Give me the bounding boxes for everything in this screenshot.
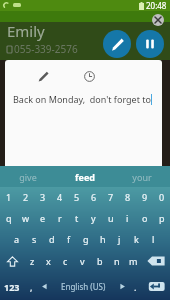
- staticText: Back on Monday, don't forget to: [13, 93, 151, 105]
- staticText: w: [22, 212, 30, 224]
- button[interactable]: ,: [24, 273, 38, 300]
- button[interactable]: p: [153, 207, 170, 228]
- staticText: f: [67, 233, 71, 245]
- staticText: k: [134, 233, 139, 245]
- staticText: English (US): [61, 281, 106, 292]
- button[interactable]: 7: [102, 187, 119, 207]
- button[interactable]: y: [85, 207, 102, 228]
- staticText: p: [159, 212, 165, 224]
- staticText: 20:48: [146, 0, 167, 11]
- staticText: your: [132, 171, 152, 183]
- button[interactable]: h: [94, 228, 111, 249]
- button[interactable]: your: [113, 166, 170, 187]
- button[interactable]: 5: [68, 187, 85, 207]
- button[interactable]: e: [34, 207, 51, 228]
- staticText: t: [75, 212, 79, 224]
- staticText: give: [19, 171, 37, 183]
- staticText: i: [126, 212, 129, 224]
- button[interactable]: 123: [0, 273, 24, 300]
- button[interactable]: b: [91, 249, 108, 273]
- button[interactable]: Edit: [103, 30, 131, 58]
- staticText: a: [14, 233, 20, 245]
- staticText: ,: [30, 281, 33, 293]
- button[interactable]: t: [68, 207, 85, 228]
- staticText: Emily: [7, 21, 45, 41]
- button[interactable]: 9: [136, 187, 153, 207]
- staticText: z: [30, 255, 35, 267]
- staticText: x: [46, 255, 51, 267]
- button[interactable]: 6: [85, 187, 102, 207]
- staticText: 1: [6, 191, 12, 203]
- staticText: m: [129, 255, 138, 267]
- button[interactable]: w: [17, 207, 34, 228]
- staticText: 2: [23, 191, 29, 203]
- button[interactable]: o: [136, 207, 153, 228]
- button[interactable]: Close: [152, 14, 164, 26]
- button[interactable]: Previous language: [38, 273, 50, 300]
- staticText: 9: [142, 191, 148, 203]
- button[interactable]: k: [128, 228, 145, 249]
- staticText: d: [49, 233, 55, 245]
- button[interactable]: j: [111, 228, 128, 249]
- button[interactable]: 1: [0, 187, 17, 207]
- button[interactable]: Enter: [142, 273, 170, 300]
- staticText: 0: [159, 191, 165, 203]
- button[interactable]: i: [119, 207, 136, 228]
- staticText: q: [6, 212, 12, 224]
- staticText: feed: [75, 171, 95, 183]
- button[interactable]: z: [24, 249, 40, 273]
- button[interactable]: Shift: [0, 249, 24, 273]
- staticText: b: [97, 255, 103, 267]
- staticText: h: [100, 233, 106, 245]
- staticText: 3: [40, 191, 46, 203]
- button[interactable]: Edit note: [5, 60, 162, 166]
- staticText: o: [142, 212, 148, 224]
- staticText: v: [80, 255, 85, 267]
- button[interactable]: 2: [17, 187, 34, 207]
- button[interactable]: u: [102, 207, 119, 228]
- staticText: n: [114, 255, 120, 267]
- button[interactable]: Set reminder: [81, 68, 97, 84]
- button[interactable]: s: [26, 228, 43, 249]
- button[interactable]: 0: [153, 187, 170, 207]
- button[interactable]: 8: [119, 187, 136, 207]
- button[interactable]: v: [74, 249, 91, 273]
- button[interactable]: n: [108, 249, 125, 273]
- staticText: 8: [125, 191, 131, 203]
- staticText: s: [32, 233, 37, 245]
- staticText: l: [152, 233, 155, 245]
- button[interactable]: feed: [56, 166, 113, 187]
- button[interactable]: a: [8, 228, 26, 249]
- staticText: 7: [108, 191, 114, 203]
- button[interactable]: English (US): [50, 273, 116, 300]
- staticText: j: [118, 233, 121, 245]
- button[interactable]: d: [43, 228, 60, 249]
- button[interactable]: r: [51, 207, 68, 228]
- button[interactable]: 4: [51, 187, 68, 207]
- button[interactable]: c: [57, 249, 74, 273]
- button[interactable]: Edit note: [35, 68, 51, 84]
- staticText: .: [134, 281, 137, 293]
- button[interactable]: q: [0, 207, 17, 228]
- staticText: y: [91, 212, 96, 224]
- button[interactable]: give: [0, 166, 56, 187]
- staticText: u: [108, 212, 114, 224]
- staticText: g: [83, 233, 89, 245]
- staticText: e: [40, 212, 46, 224]
- button[interactable]: x: [40, 249, 57, 273]
- staticText: 6: [91, 191, 97, 203]
- staticText: 4: [57, 191, 63, 203]
- button[interactable]: Backspace: [142, 249, 170, 273]
- button[interactable]: .: [128, 273, 142, 300]
- button[interactable]: Pause: [136, 30, 164, 58]
- button[interactable]: 3: [34, 187, 51, 207]
- staticText: 055-339-2576: [14, 42, 78, 56]
- staticText: r: [58, 212, 62, 224]
- button[interactable]: l: [145, 228, 162, 249]
- button[interactable]: g: [77, 228, 94, 249]
- staticText: 123: [4, 281, 20, 293]
- button[interactable]: m: [125, 249, 142, 273]
- button[interactable]: Next language: [116, 273, 128, 300]
- button[interactable]: f: [60, 228, 77, 249]
- staticText: c: [63, 255, 68, 267]
